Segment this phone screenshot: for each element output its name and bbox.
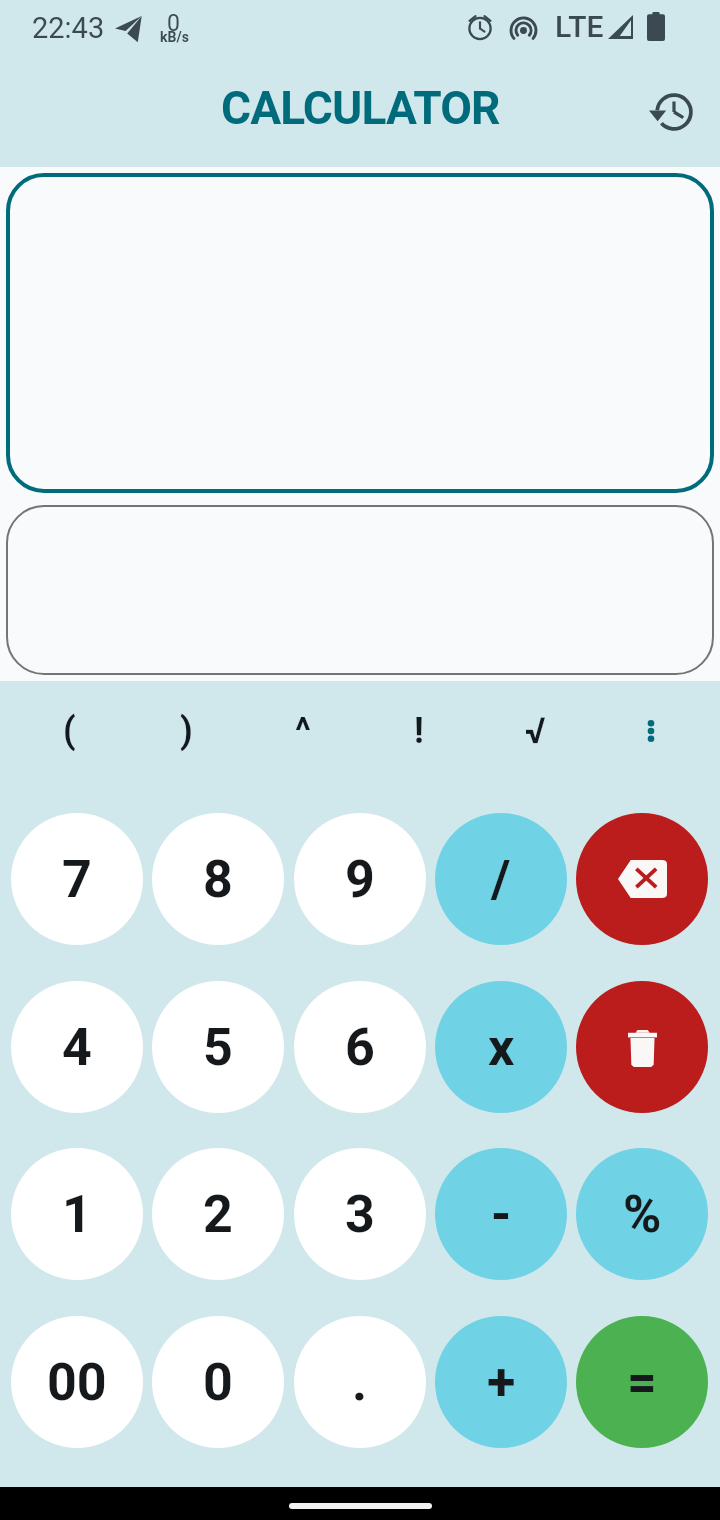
staticText: 9 (345, 849, 375, 910)
button[interactable]: 4 (11, 981, 143, 1113)
button[interactable]: - (435, 1148, 567, 1280)
button[interactable] (6, 505, 714, 675)
staticText: 5 (203, 1017, 233, 1078)
button[interactable]: 7 (11, 813, 143, 945)
staticText: 22:43 (32, 11, 105, 45)
button[interactable]: ) (128, 701, 245, 761)
staticText: ! (414, 710, 424, 752)
staticText: 3 (345, 1184, 375, 1245)
staticText: 6 (345, 1017, 375, 1078)
staticText: % (623, 1184, 662, 1245)
button[interactable]: x (435, 981, 567, 1113)
button[interactable]: 9 (294, 813, 426, 945)
button[interactable]: 0 (152, 1316, 284, 1448)
staticText: . (352, 1352, 368, 1413)
staticText: 00 (47, 1352, 107, 1413)
staticText: 7 (62, 849, 92, 910)
button[interactable]: 00 (11, 1316, 143, 1448)
staticText: 4 (62, 1017, 92, 1078)
button[interactable]: 1 (11, 1148, 143, 1280)
button[interactable]: / (435, 813, 567, 945)
staticText: x (488, 1017, 515, 1078)
button[interactable]: 2 (152, 1148, 284, 1280)
button[interactable]: More options (593, 701, 709, 761)
staticText: + (487, 1352, 516, 1413)
button[interactable]: ^ (245, 701, 361, 761)
staticText: CALCULATOR (221, 81, 500, 135)
staticText: 8 (203, 849, 233, 910)
button[interactable]: 3 (294, 1148, 426, 1280)
staticText: / (491, 849, 511, 910)
staticText: √ (525, 710, 546, 752)
staticText: = (627, 1352, 657, 1413)
button[interactable]: 5 (152, 981, 284, 1113)
staticText: kB/s (160, 29, 189, 45)
button[interactable]: ! (361, 701, 477, 761)
button[interactable]: History (639, 82, 702, 145)
staticText: ) (180, 710, 193, 752)
staticText: LTE (555, 9, 604, 44)
staticText: 2 (203, 1184, 233, 1245)
button[interactable]: 6 (294, 981, 426, 1113)
staticText: 1 (62, 1184, 92, 1245)
button[interactable]: Backspace (576, 813, 708, 945)
button[interactable]: 8 (152, 813, 284, 945)
staticText: 0 (203, 1352, 233, 1413)
button[interactable] (6, 173, 714, 493)
button[interactable]: + (435, 1316, 567, 1448)
staticText: 0 (167, 10, 180, 37)
button[interactable]: = (576, 1316, 708, 1448)
button[interactable]: % (576, 1148, 708, 1280)
button[interactable]: Clear all (576, 981, 708, 1113)
button[interactable]: √ (477, 701, 593, 761)
staticText: ^ (295, 710, 311, 752)
button[interactable]: . (294, 1316, 426, 1448)
button[interactable]: ( (11, 701, 128, 761)
staticText: - (491, 1184, 512, 1245)
staticText: ( (63, 710, 76, 752)
